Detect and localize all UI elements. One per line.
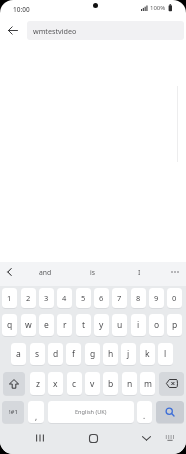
button[interactable]: 6 — [94, 288, 109, 308]
button[interactable]: b — [103, 372, 118, 395]
button[interactable]: o — [149, 314, 164, 336]
button[interactable]: l — [158, 343, 173, 365]
staticText: 1 — [7, 293, 12, 303]
button[interactable]: 1 — [2, 288, 17, 308]
button[interactable] — [32, 430, 48, 446]
button[interactable]: c — [67, 372, 82, 395]
button[interactable]: 9 — [149, 288, 164, 308]
button[interactable] — [156, 401, 184, 423]
button[interactable]: k — [140, 343, 155, 365]
button[interactable]: is — [76, 260, 110, 284]
staticText: l — [164, 348, 167, 360]
staticText: r — [63, 319, 67, 331]
staticText: 0 — [172, 293, 177, 303]
button[interactable] — [166, 260, 184, 284]
staticText: u — [117, 319, 123, 331]
staticText: w — [25, 319, 32, 331]
staticText: y — [99, 319, 104, 331]
button[interactable] — [138, 430, 154, 446]
button[interactable]: x — [48, 372, 63, 395]
staticText: o — [154, 319, 160, 331]
button[interactable]: s — [30, 343, 45, 365]
staticText: p — [172, 319, 178, 331]
button[interactable]: q — [2, 314, 17, 336]
button[interactable]: r — [57, 314, 72, 336]
staticText: v — [90, 378, 95, 390]
staticText: h — [108, 348, 114, 360]
staticText: a — [16, 348, 21, 360]
staticText: English (UK) — [75, 408, 107, 416]
button[interactable]: 2 — [21, 288, 36, 308]
button[interactable]: u — [112, 314, 127, 336]
staticText: x — [53, 378, 58, 390]
button[interactable]: v — [85, 372, 100, 395]
staticText: !#1 — [9, 408, 18, 416]
button[interactable]: h — [103, 343, 118, 365]
button[interactable]: I — [122, 260, 156, 284]
button[interactable]: e — [39, 314, 54, 336]
staticText: e — [44, 319, 49, 331]
button[interactable] — [163, 431, 177, 445]
button[interactable]: English (UK) — [48, 401, 134, 423]
staticText: 100% — [150, 4, 166, 12]
staticText: 4 — [62, 293, 67, 303]
staticText: 9 — [154, 293, 159, 303]
button[interactable]: m — [140, 372, 155, 395]
staticText: d — [53, 348, 59, 360]
staticText: q — [7, 319, 13, 331]
staticText: I — [138, 268, 141, 277]
button[interactable]: z — [30, 372, 45, 395]
staticText: 2 — [26, 293, 31, 303]
button[interactable]: 0 — [167, 288, 182, 308]
button[interactable] — [2, 260, 16, 284]
button[interactable]: n — [122, 372, 137, 395]
staticText: . — [143, 410, 146, 421]
staticText: 3 — [44, 293, 49, 303]
button[interactable] — [3, 372, 25, 395]
staticText: 7 — [117, 293, 122, 303]
button[interactable]: p — [167, 314, 182, 336]
button[interactable] — [159, 372, 184, 395]
staticText: k — [145, 348, 150, 360]
staticText: 8 — [136, 293, 141, 303]
button[interactable]: j — [121, 343, 136, 365]
button[interactable]: g — [85, 343, 100, 365]
button[interactable]: wmtestvideo — [27, 21, 184, 40]
staticText: i — [137, 319, 140, 331]
staticText: 5 — [81, 293, 86, 303]
button[interactable]: . — [137, 401, 152, 423]
button[interactable]: t — [76, 314, 91, 336]
staticText: and — [39, 268, 52, 277]
button[interactable]: a — [11, 343, 26, 365]
button[interactable]: 3 — [39, 288, 54, 308]
staticText: m — [144, 378, 152, 390]
staticText: 6 — [99, 293, 104, 303]
button[interactable]: and — [28, 260, 62, 284]
staticText: , — [35, 411, 38, 422]
button[interactable]: 4 — [57, 288, 72, 308]
staticText: c — [72, 378, 77, 390]
staticText: wmtestvideo — [33, 26, 77, 36]
button[interactable]: 8 — [131, 288, 146, 308]
button[interactable]: f — [66, 343, 81, 365]
staticText: s — [35, 348, 40, 360]
staticText: z — [36, 378, 40, 390]
button[interactable]: w — [21, 314, 36, 336]
button[interactable]: 5 — [76, 288, 91, 308]
staticText: t — [82, 319, 86, 331]
button[interactable]: 7 — [112, 288, 127, 308]
staticText: j — [127, 348, 130, 360]
button[interactable]: i — [131, 314, 146, 336]
button[interactable]: , — [28, 401, 44, 423]
button[interactable] — [4, 21, 22, 39]
button[interactable]: y — [94, 314, 109, 336]
staticText: f — [72, 348, 75, 360]
button[interactable]: !#1 — [2, 401, 24, 423]
staticText: g — [90, 348, 96, 360]
staticText: 10:00 — [13, 5, 30, 14]
staticText: is — [90, 268, 96, 277]
staticText: b — [108, 378, 114, 390]
button[interactable]: d — [48, 343, 63, 365]
staticText: n — [127, 378, 133, 390]
button[interactable] — [85, 430, 101, 446]
